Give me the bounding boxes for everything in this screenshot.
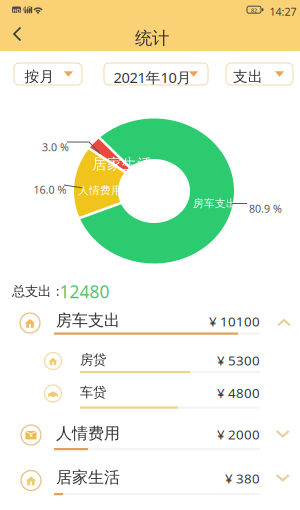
staticText: 2021年10月 — [113, 67, 191, 87]
staticText: ¥ 5300 — [217, 351, 260, 369]
staticText: 支出 — [233, 67, 263, 85]
staticText: ¥ 380 — [225, 469, 260, 487]
staticText: 16.0 % — [33, 182, 66, 197]
staticText: 按月 — [24, 67, 54, 85]
staticText: ¥ 2000 — [217, 425, 260, 443]
staticText: ¥ 10100 — [209, 312, 260, 330]
staticText: 车贷 — [80, 384, 106, 400]
staticText: 房车支出 — [56, 310, 120, 330]
staticText: 居家生活 — [92, 155, 152, 173]
button[interactable]: 人情费用 — [0, 416, 300, 452]
staticText: 80.9 % — [249, 201, 282, 216]
staticText: 总支出： — [12, 283, 64, 299]
staticText: 人情费用 — [56, 423, 120, 443]
staticText: 82 — [251, 7, 257, 14]
button[interactable]: 支出 — [226, 63, 293, 85]
staticText: 居家生活 — [56, 467, 120, 487]
button[interactable]: 按月 — [14, 63, 82, 85]
staticText: 12480 — [59, 280, 109, 303]
staticText: 14:27 — [269, 5, 296, 19]
staticText: 3.0 % — [42, 140, 69, 154]
staticText: 4G — [22, 4, 31, 13]
staticText: 人情费用 — [78, 184, 122, 197]
button[interactable]: 2021年10月 — [104, 63, 208, 85]
staticText: ¥ 4800 — [217, 384, 260, 402]
button[interactable]: 居家生活 — [0, 460, 300, 496]
button[interactable]: Back — [0, 0, 300, 51]
button[interactable]: 车贷 — [0, 374, 300, 409]
staticText: HD — [12, 7, 20, 14]
staticText: 房贷 — [80, 351, 106, 368]
staticText: 统计 — [135, 27, 169, 49]
button[interactable]: 房车支出 — [0, 303, 300, 337]
staticText: 房车支出 — [193, 197, 237, 210]
button[interactable]: 房贷 — [0, 342, 300, 375]
